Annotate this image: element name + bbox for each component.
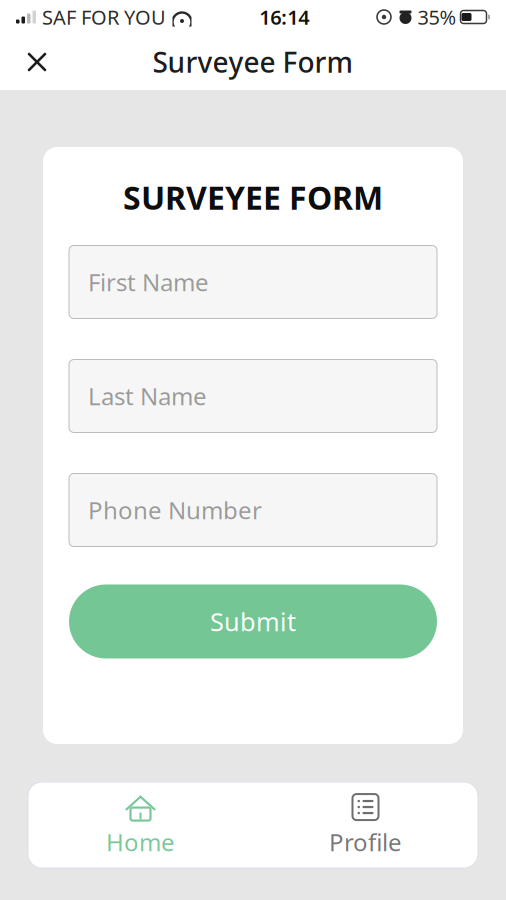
staticText: Last Name	[88, 380, 207, 412]
staticText: Home	[106, 826, 175, 858]
staticText: Profile	[329, 826, 402, 858]
button[interactable]: Profile	[253, 782, 478, 868]
staticText: 16:14	[259, 4, 309, 30]
staticText: First Name	[88, 266, 209, 298]
button[interactable]: Close	[11, 36, 63, 88]
button[interactable]: Home	[28, 782, 253, 868]
staticText: Surveyee Form	[152, 43, 353, 81]
staticText: Phone Number	[88, 494, 262, 526]
staticText: SAF FOR YOU	[42, 4, 166, 30]
staticText: 35%	[417, 4, 456, 30]
staticText: Submit	[210, 605, 296, 638]
staticText: SURVEYEE FORM	[123, 176, 383, 218]
button[interactable]: Submit	[69, 584, 437, 658]
